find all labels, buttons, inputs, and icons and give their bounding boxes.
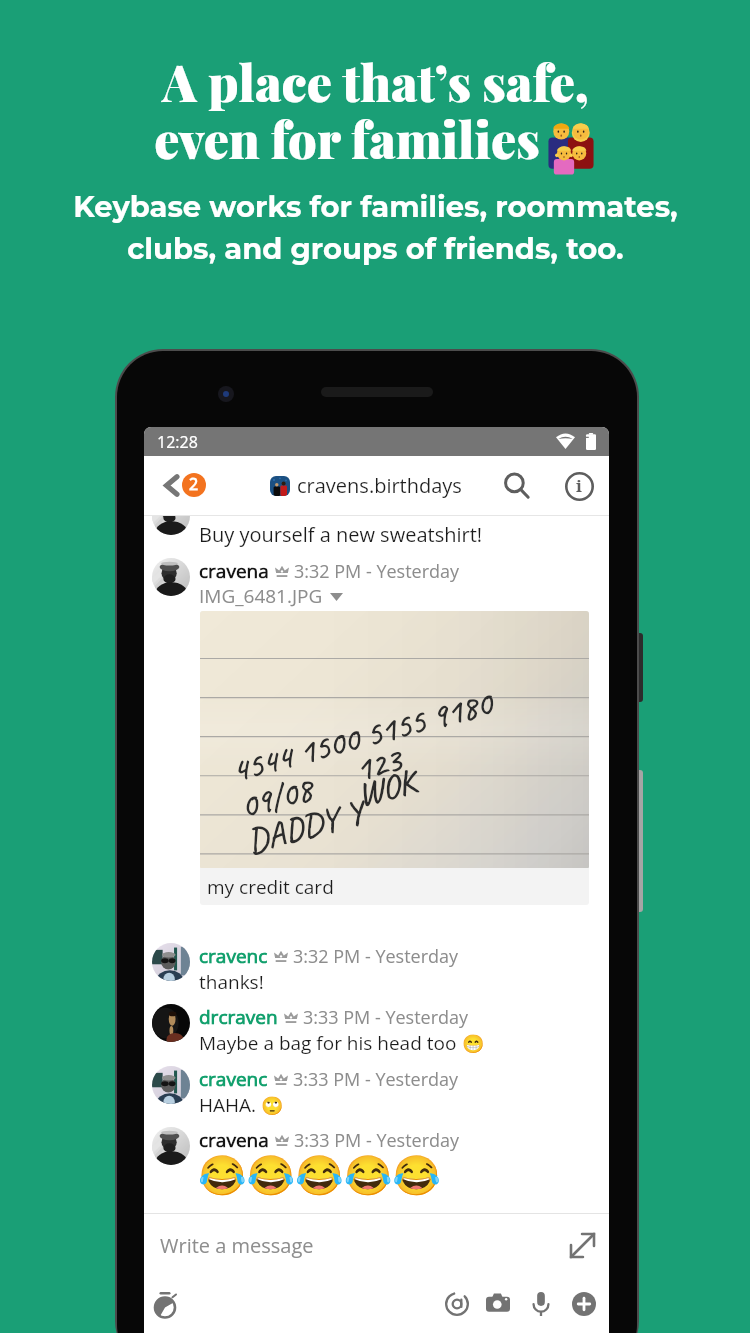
staticText: cravenc: [199, 943, 268, 969]
button[interactable]: IMG_6481.JPG: [199, 583, 343, 609]
staticText: 123: [350, 738, 406, 791]
staticText: thanks!: [199, 969, 264, 995]
button[interactable]: Add attachment: [564, 1284, 604, 1324]
staticText: 09/08: [236, 767, 317, 828]
button[interactable]: Search: [494, 463, 540, 509]
other: family emoji: [546, 117, 596, 169]
staticText: 4544 1500 5155 9180: [227, 681, 497, 792]
staticText: WOK: [352, 759, 420, 816]
staticText: cravena: [199, 558, 269, 584]
button[interactable]: Camera: [478, 1284, 518, 1324]
button[interactable]: Conversation info: [556, 463, 602, 509]
button[interactable]: drcraven: [199, 1004, 485, 1056]
staticText: HAHA.: [199, 1092, 261, 1118]
staticText: 😂😂😂😂😂: [198, 1153, 441, 1199]
staticText: cravena: [199, 1127, 269, 1153]
staticText: 3:33 PM - Yesterday: [293, 1067, 459, 1092]
staticText: IMG_6481.JPG: [199, 583, 323, 609]
staticText: Maybe a bag for his head too: [199, 1030, 462, 1056]
button[interactable]: Mention someone: [437, 1284, 477, 1324]
staticText: cravens.birthdays: [297, 472, 462, 499]
staticText: 3:33 PM - Yesterday: [303, 1005, 469, 1030]
staticText: 2: [189, 473, 199, 495]
button[interactable]: Write a message: [144, 1214, 609, 1276]
button[interactable]: cravenc: [199, 1066, 459, 1118]
button[interactable]: cravens.birthdays: [270, 472, 462, 499]
staticText: i: [576, 474, 582, 497]
staticText: 3:32 PM - Yesterday: [293, 944, 459, 969]
staticText: Buy yourself a new sweatshirt!: [199, 521, 483, 548]
staticText: cravenc: [199, 1066, 268, 1092]
staticText: 12:28: [157, 431, 198, 453]
button[interactable]: Exploding message timer: [145, 1284, 185, 1324]
staticText: 🙄: [261, 1095, 284, 1116]
staticText: 3:32 PM - Yesterday: [294, 559, 460, 584]
staticText: 😁: [462, 1033, 485, 1054]
staticText: 3:33 PM - Yesterday: [294, 1128, 460, 1153]
staticText: DADDY Y: [242, 790, 367, 863]
staticText: my credit card: [207, 874, 334, 900]
staticText: A place that’s safe,: [162, 48, 589, 115]
staticText: clubs, and groups of friends, too.: [127, 231, 624, 266]
staticText: drcraven: [199, 1004, 278, 1030]
staticText: Keybase works for families, roommates,: [73, 189, 678, 224]
staticText: Write a message: [160, 1232, 314, 1259]
button[interactable]: Expand composer: [562, 1225, 602, 1265]
button[interactable]: Record audio: [521, 1284, 561, 1324]
staticText: even for families: [154, 105, 540, 172]
button[interactable]: cravenc: [199, 943, 459, 995]
button[interactable]: Back, 2 unread: [161, 469, 210, 501]
